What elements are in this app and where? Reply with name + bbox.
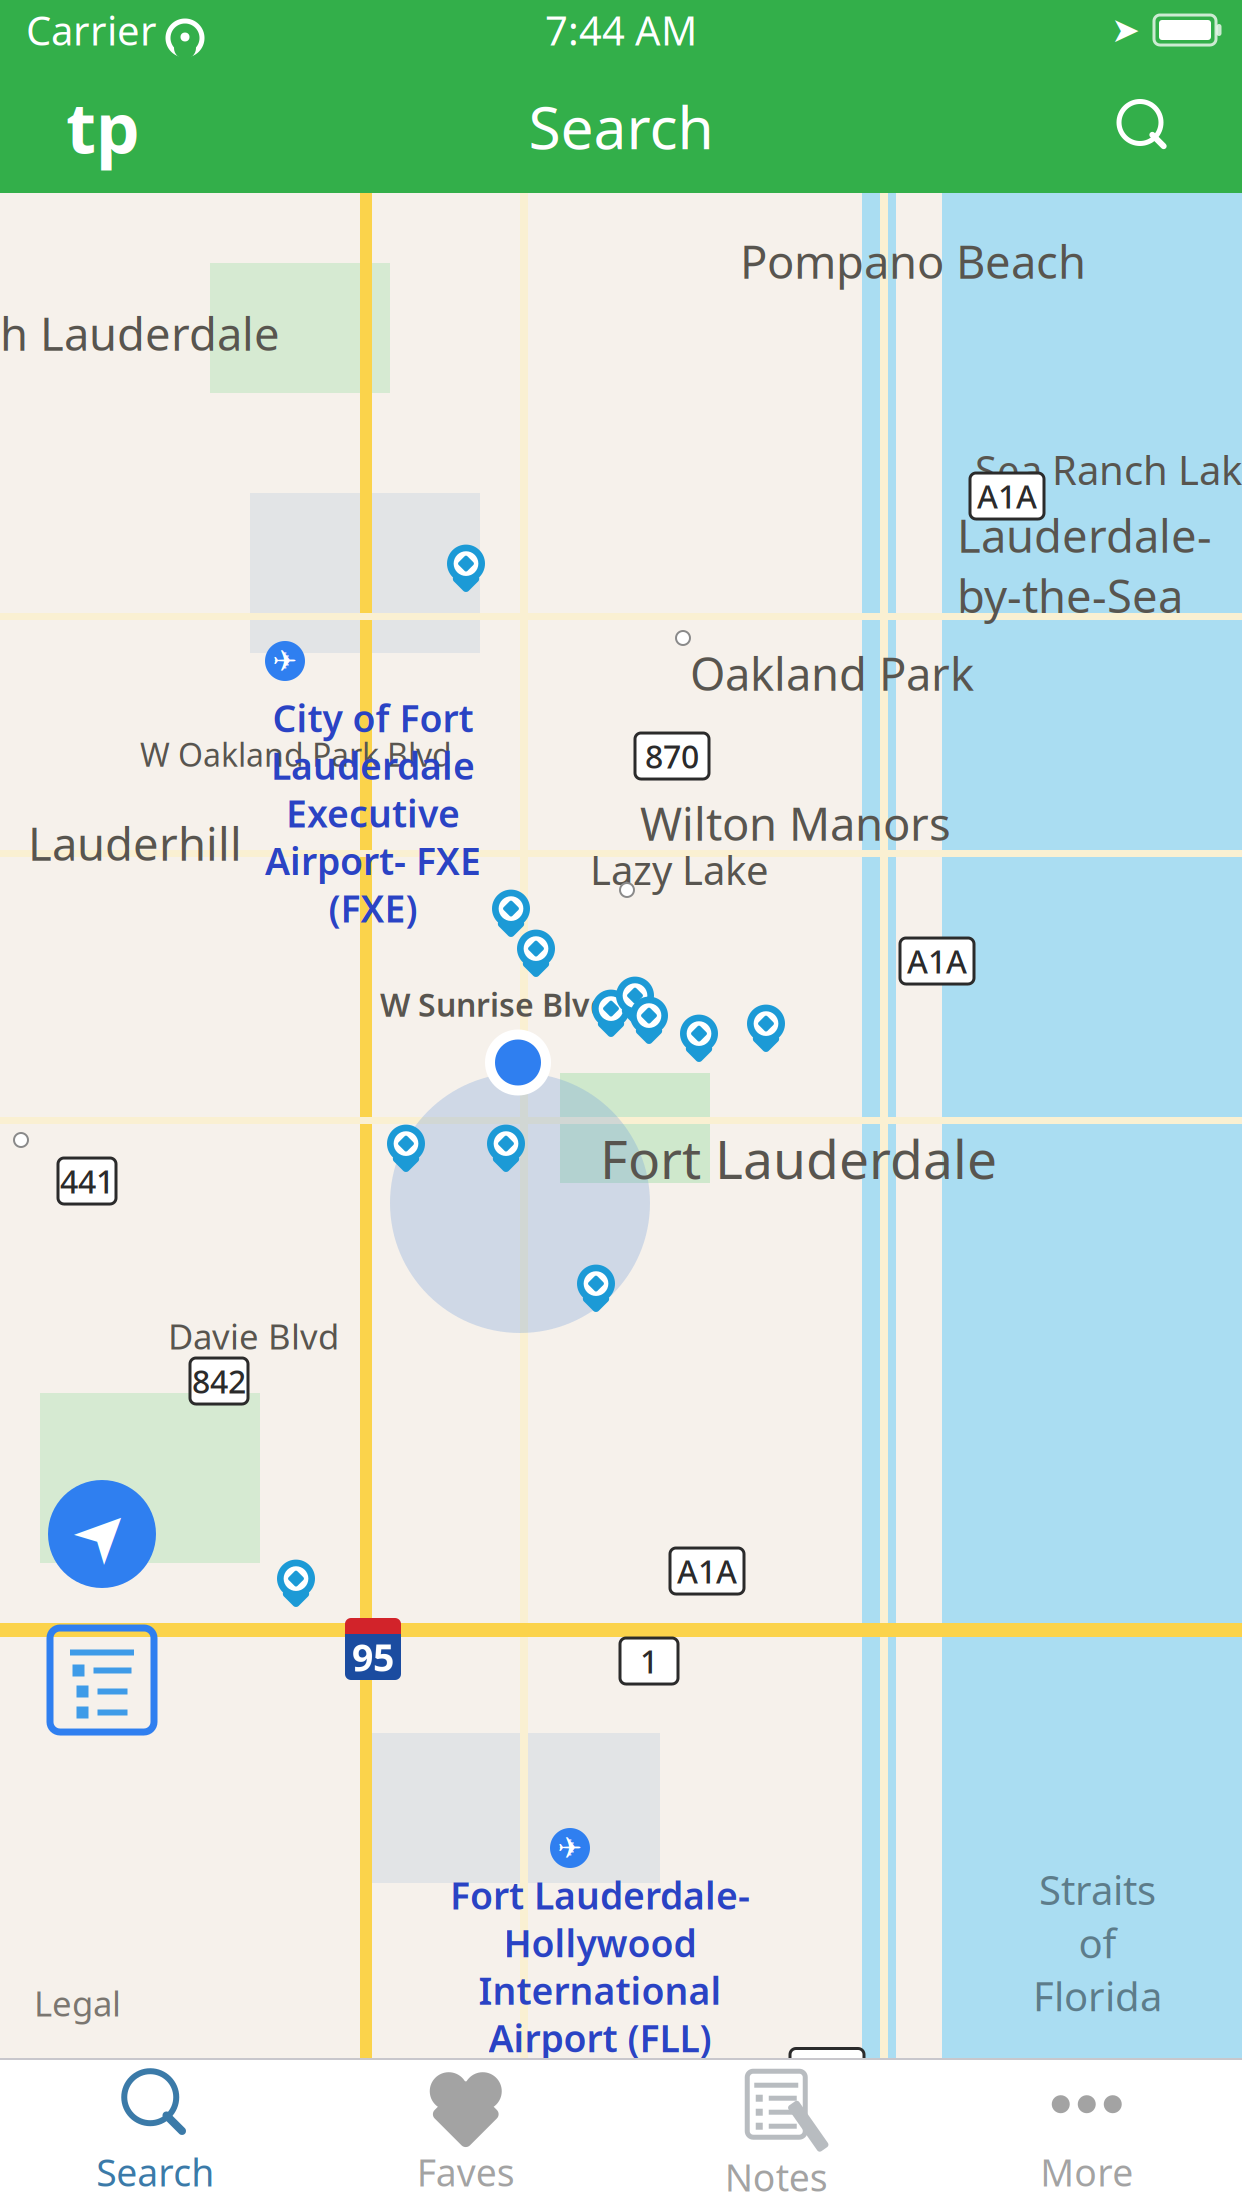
staticText: Sea Ranch Lak bbox=[975, 443, 1242, 496]
staticText: A1A bbox=[797, 2050, 857, 2093]
staticText: Oakland Park bbox=[690, 643, 974, 703]
button[interactable]: Faves bbox=[310, 2059, 621, 2208]
staticText: Lazy Lake bbox=[590, 843, 769, 896]
staticText: by-the-Sea bbox=[957, 565, 1183, 625]
staticText: Straits bbox=[1039, 1863, 1156, 1916]
staticText: Legal bbox=[34, 1980, 121, 2026]
button[interactable]: Show list bbox=[44, 1622, 160, 1738]
staticText: Fort Lauderdale- bbox=[450, 1870, 750, 1920]
staticText: (FXE) bbox=[328, 883, 417, 933]
staticText: Davie Blvd bbox=[168, 1313, 339, 1359]
staticText: ➤ bbox=[74, 1496, 130, 1572]
staticText: h Lauderdale bbox=[0, 303, 280, 363]
staticText: W Oakland Park Blvd bbox=[140, 733, 452, 775]
staticText: Airport- FXE bbox=[265, 836, 481, 885]
staticText: International bbox=[478, 1965, 721, 2015]
staticText: ✈ bbox=[557, 1831, 582, 1865]
staticText: Carrier bbox=[26, 3, 157, 56]
staticText: Florida bbox=[1033, 1969, 1162, 2022]
staticText: A1A bbox=[977, 475, 1037, 517]
staticText: A1A bbox=[907, 940, 967, 982]
staticText: 870 bbox=[645, 735, 699, 777]
button[interactable]: Search bbox=[1094, 81, 1194, 171]
staticText: Pompano Beach bbox=[740, 231, 1086, 291]
staticText: 842 bbox=[192, 1360, 246, 1402]
staticText: of bbox=[1078, 1916, 1116, 1969]
staticText: Faves bbox=[417, 2147, 515, 2197]
staticText: Search bbox=[96, 2147, 214, 2197]
staticText: Search bbox=[528, 87, 713, 165]
staticText: Wilton Manors bbox=[640, 793, 951, 853]
staticText: Executive bbox=[286, 788, 460, 838]
staticText: tp bbox=[66, 80, 140, 173]
staticText: W Sunrise Blvd bbox=[380, 983, 610, 1025]
staticText: Lauderdale- bbox=[957, 505, 1212, 565]
staticText: City of Fort bbox=[272, 693, 473, 743]
staticText: More bbox=[1040, 2147, 1133, 2197]
staticText: 7:44 AM bbox=[545, 3, 697, 56]
staticText: Airport (FLL) bbox=[488, 2013, 711, 2063]
staticText: Fort Lauderdale bbox=[600, 1123, 997, 1194]
staticText: Lauderhill bbox=[28, 813, 242, 873]
staticText: 95 bbox=[352, 1632, 394, 1682]
staticText: 1 bbox=[640, 1640, 658, 1682]
staticText: Notes bbox=[725, 2152, 828, 2202]
button[interactable]: TripIt home bbox=[48, 81, 158, 171]
staticText: ➤ bbox=[1111, 10, 1140, 50]
staticText: ✈ bbox=[272, 644, 297, 678]
staticText: 441 bbox=[60, 1160, 114, 1202]
button[interactable]: More bbox=[931, 2059, 1242, 2208]
staticText: Hollywood bbox=[503, 1918, 696, 1967]
button[interactable]: Search bbox=[0, 2059, 310, 2208]
staticText: A1A bbox=[677, 1550, 737, 1592]
button[interactable]: Notes bbox=[621, 2059, 931, 2208]
staticText: Lauderdale bbox=[271, 741, 475, 790]
button[interactable]: Center on my location bbox=[48, 1480, 156, 1588]
